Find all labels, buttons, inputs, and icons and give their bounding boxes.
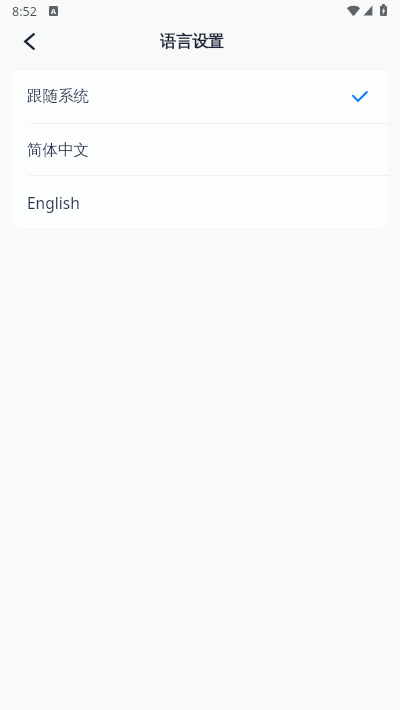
staticText: 跟随系统: [27, 86, 89, 106]
button[interactable]: English: [10, 176, 390, 229]
staticText: 简体中文: [27, 140, 89, 160]
staticText: 8:52: [12, 3, 37, 20]
button[interactable]: Back: [5, 22, 53, 61]
button[interactable]: 跟随系统: [10, 69, 390, 123]
staticText: English: [27, 192, 80, 213]
button[interactable]: 简体中文: [10, 124, 390, 175]
staticText: A: [51, 6, 56, 16]
staticText: 语言设置: [160, 32, 224, 52]
